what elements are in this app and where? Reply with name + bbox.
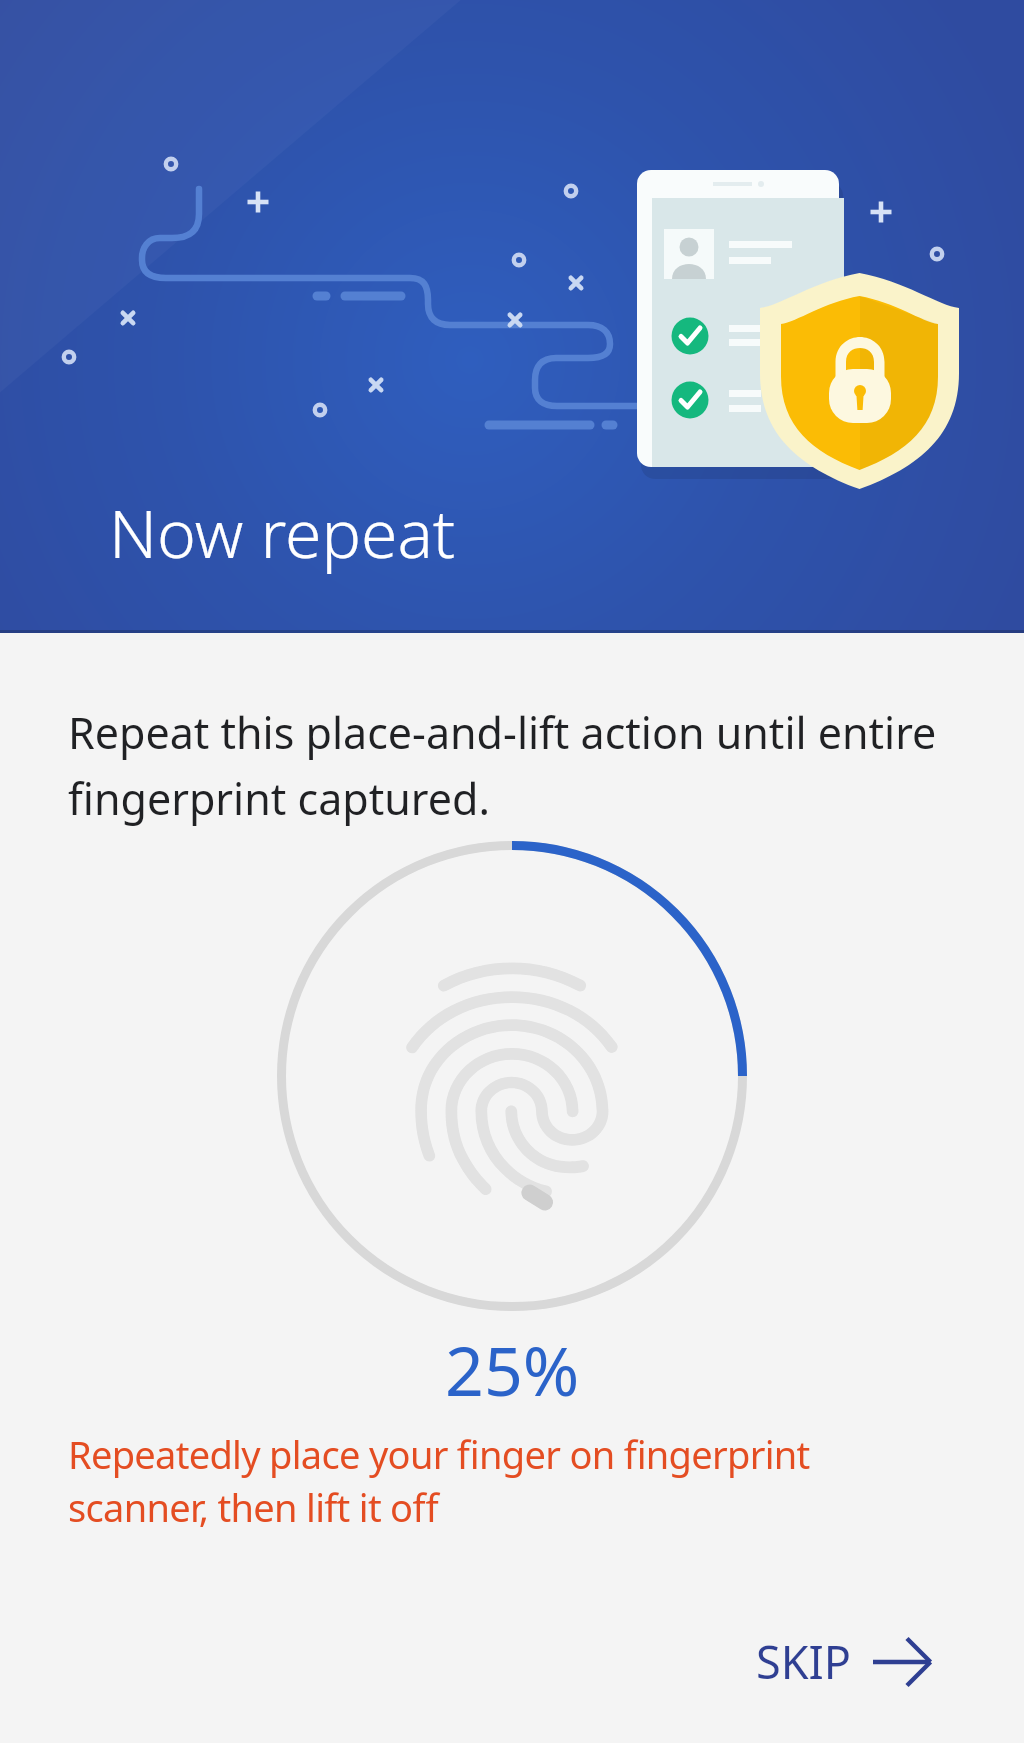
staticText: Now repeat [109,487,456,577]
button[interactable]: SKIP [738,1609,949,1714]
staticText: SKIP [756,1631,852,1692]
other: Skip [873,1639,931,1685]
staticText: 25% [445,1323,580,1416]
staticText: Repeatedly place your finger on fingerpr… [68,1428,848,1534]
staticText: Repeat this place-and-lift action until … [68,703,968,827]
